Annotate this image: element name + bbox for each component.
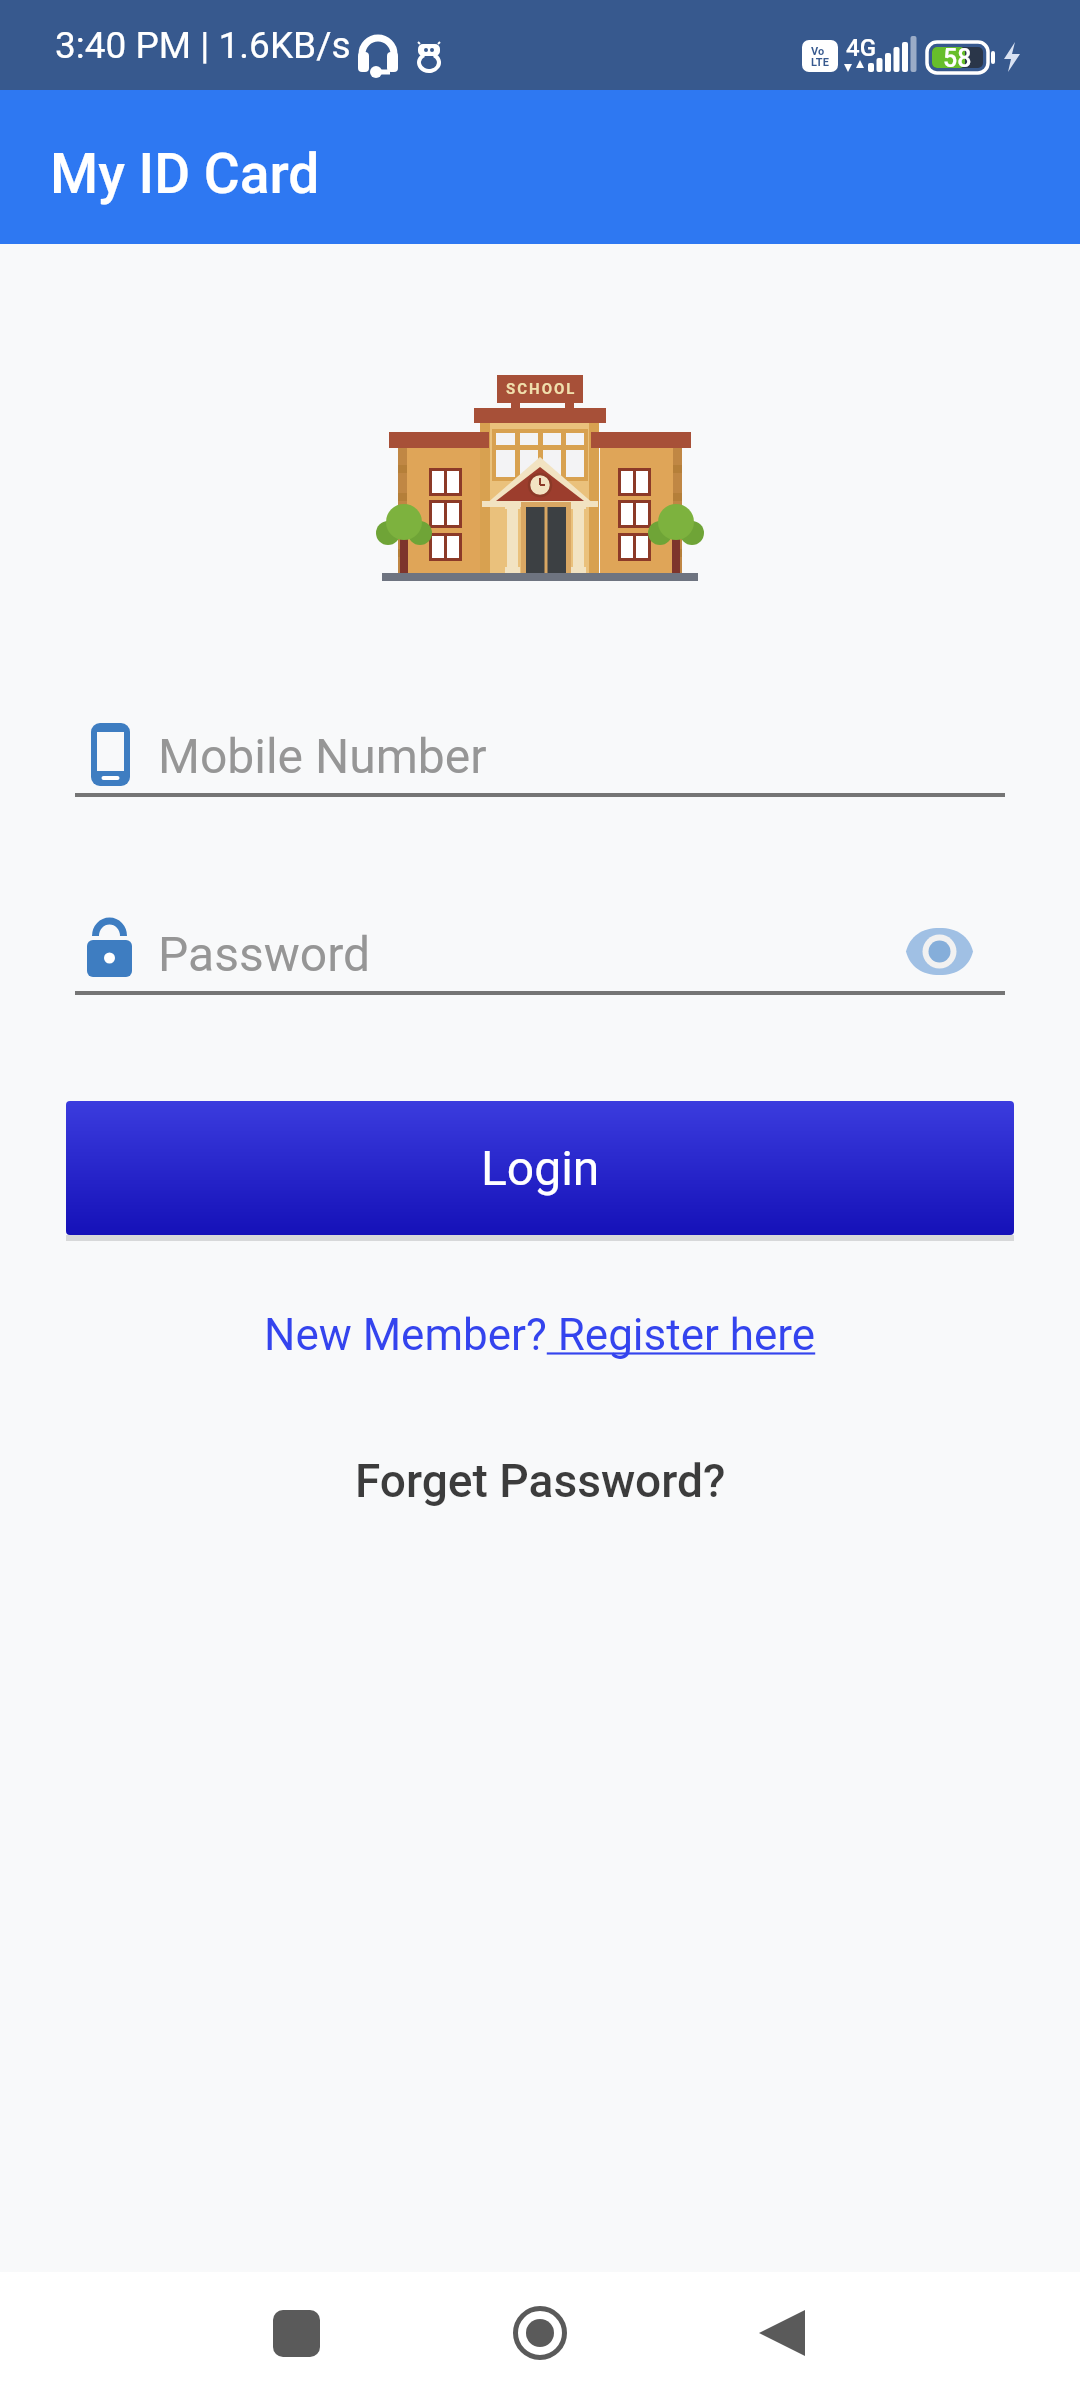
button[interactable]	[490, 2283, 590, 2383]
staticText: New Member? Register here	[264, 1309, 816, 1361]
button[interactable]: Mobile Number	[75, 706, 1005, 792]
button[interactable]	[906, 928, 973, 975]
button[interactable]	[732, 2283, 832, 2383]
button[interactable]	[246, 2283, 346, 2383]
staticText: Vo LTE	[811, 45, 829, 68]
staticText: SCHOOL	[506, 380, 577, 398]
staticText: Password	[158, 926, 371, 982]
button[interactable]: Forget Password?	[0, 1446, 1080, 1516]
staticText: 3:40 PM | 1.6KB/s	[55, 24, 351, 67]
staticText: Mobile Number	[158, 728, 487, 784]
button[interactable]: Login	[66, 1101, 1014, 1235]
button[interactable]: Password	[75, 904, 1005, 990]
staticText: Login	[481, 1140, 600, 1196]
staticText: My ID Card	[50, 142, 320, 206]
button[interactable]: New Member? Register here	[0, 1300, 1080, 1370]
staticText: 4G	[846, 34, 876, 62]
staticText: 58	[943, 44, 972, 73]
staticText: Forget Password?	[355, 1454, 726, 1508]
